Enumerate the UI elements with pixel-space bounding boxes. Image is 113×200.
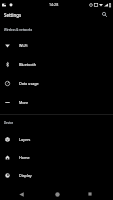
staticText: Display <box>19 173 32 178</box>
button[interactable]: Search <box>98 8 110 20</box>
staticText: Wi-Fi <box>19 43 28 48</box>
staticText: Wireless & networks <box>4 28 33 32</box>
button[interactable]: Home <box>0 148 113 166</box>
button[interactable]: Bluetooth <box>0 55 113 74</box>
button[interactable]: More <box>0 93 113 112</box>
staticText: Settings <box>4 12 22 18</box>
staticText: Data usage <box>19 81 39 86</box>
button[interactable]: Display <box>0 166 113 184</box>
staticText: 14:28 <box>49 2 59 7</box>
staticText: Device <box>4 121 14 125</box>
button[interactable]: Layers <box>0 130 113 148</box>
staticText: Layers <box>19 137 31 142</box>
button[interactable]: Home <box>50 187 64 200</box>
button[interactable]: Back <box>14 187 28 200</box>
staticText: Home <box>19 155 30 160</box>
button[interactable]: Data usage <box>0 74 113 93</box>
button[interactable]: Recents <box>83 187 97 200</box>
staticText: More <box>19 100 29 105</box>
button[interactable]: Wi-Fi <box>0 36 113 55</box>
staticText: Bluetooth <box>19 62 37 67</box>
